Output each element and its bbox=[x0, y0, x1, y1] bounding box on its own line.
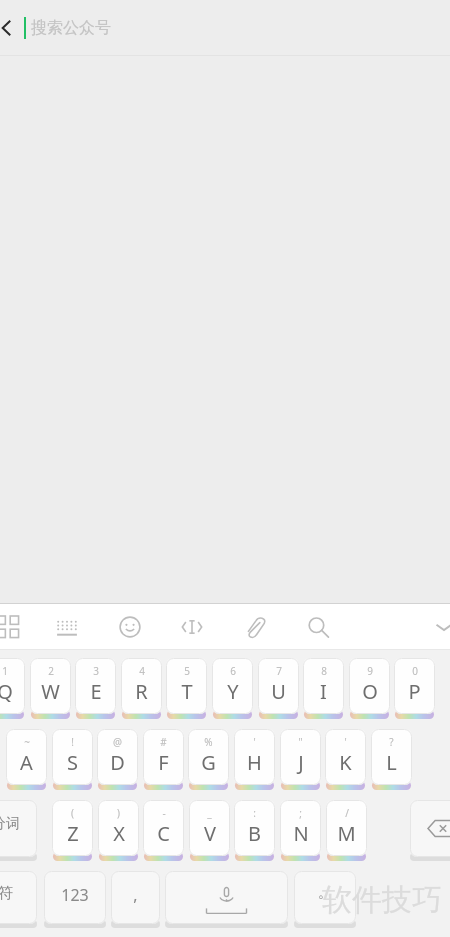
staticText: - bbox=[162, 806, 166, 820]
button[interactable]: ! bbox=[52, 729, 93, 791]
staticText: L bbox=[386, 749, 397, 776]
staticText: 7 bbox=[276, 664, 282, 678]
button[interactable]: 123 bbox=[44, 871, 106, 929]
staticText: P bbox=[408, 678, 421, 705]
staticText: ? bbox=[389, 735, 394, 749]
staticText: 符 bbox=[0, 884, 13, 903]
button[interactable]: 7 bbox=[258, 658, 299, 720]
button[interactable]: Emoji bbox=[116, 604, 144, 649]
staticText: F bbox=[158, 749, 169, 776]
staticText: G bbox=[201, 749, 216, 776]
staticText: _ bbox=[207, 806, 212, 820]
staticText: : bbox=[253, 806, 256, 820]
staticText: ! bbox=[71, 735, 74, 749]
button[interactable]: 0 bbox=[394, 658, 435, 720]
staticText: ' bbox=[344, 735, 347, 749]
staticText: I bbox=[320, 678, 327, 705]
button[interactable] bbox=[410, 800, 450, 862]
button[interactable]: Panels bbox=[0, 604, 22, 649]
button[interactable]: 4 bbox=[121, 658, 162, 720]
staticText: ; bbox=[299, 806, 302, 820]
staticText: M bbox=[337, 820, 356, 847]
button[interactable]: Keyboard bbox=[53, 604, 81, 649]
staticText: 3 bbox=[93, 664, 99, 678]
button[interactable]: % bbox=[188, 729, 229, 791]
button[interactable]: : bbox=[234, 800, 275, 862]
button[interactable]: / bbox=[326, 800, 367, 862]
button[interactable]: ( bbox=[52, 800, 93, 862]
button[interactable]: 2 bbox=[30, 658, 71, 720]
button[interactable]: 。 bbox=[294, 871, 356, 929]
button[interactable]: ~ bbox=[6, 729, 47, 791]
staticText: E bbox=[90, 678, 102, 705]
button[interactable]: Search bbox=[304, 604, 332, 649]
staticText: Y bbox=[227, 678, 239, 705]
staticText: 5 bbox=[184, 664, 190, 678]
staticText: 。 bbox=[318, 884, 332, 902]
button[interactable]: Back bbox=[0, 13, 22, 43]
button[interactable]: 符 bbox=[0, 871, 37, 929]
button[interactable]: 搜索公众号 bbox=[24, 17, 450, 39]
button[interactable]: Edit text bbox=[178, 604, 206, 649]
staticText: Z bbox=[67, 820, 79, 847]
staticText: 0 bbox=[412, 664, 418, 678]
button[interactable]: 1 bbox=[0, 658, 25, 720]
staticText: 1 bbox=[2, 664, 8, 678]
button[interactable]: 9 bbox=[349, 658, 390, 720]
staticText: H bbox=[247, 749, 262, 776]
staticText: 123 bbox=[61, 884, 89, 906]
staticText: J bbox=[298, 749, 304, 776]
staticText: O bbox=[362, 678, 378, 705]
staticText: " bbox=[298, 735, 303, 749]
button[interactable]: - bbox=[143, 800, 184, 862]
button[interactable]: Hide keyboard bbox=[430, 604, 450, 649]
button[interactable]: ? bbox=[371, 729, 412, 791]
staticText: @ bbox=[113, 735, 122, 749]
staticText: 分词 bbox=[0, 815, 20, 833]
staticText: % bbox=[204, 735, 213, 749]
staticText: 软件技巧 bbox=[322, 881, 442, 919]
button[interactable]: ' bbox=[325, 729, 366, 791]
staticText: 2 bbox=[48, 664, 54, 678]
staticText: ( bbox=[71, 806, 74, 820]
button[interactable]: Clipboard bbox=[241, 604, 269, 649]
staticText: U bbox=[271, 678, 286, 705]
staticText: Q bbox=[0, 678, 13, 705]
button[interactable]: 5 bbox=[166, 658, 207, 720]
staticText: R bbox=[135, 678, 148, 705]
staticText: 6 bbox=[230, 664, 236, 678]
button[interactable]: ' bbox=[234, 729, 275, 791]
staticText: A bbox=[20, 749, 33, 776]
staticText: , bbox=[133, 884, 138, 906]
staticText: C bbox=[157, 820, 170, 847]
staticText: 9 bbox=[367, 664, 373, 678]
button[interactable]: 3 bbox=[75, 658, 116, 720]
button[interactable]: @ bbox=[97, 729, 138, 791]
button[interactable]: ) bbox=[98, 800, 139, 862]
staticText: D bbox=[110, 749, 125, 776]
staticText: W bbox=[41, 678, 60, 705]
staticText: # bbox=[160, 735, 167, 749]
button[interactable]: _ bbox=[189, 800, 230, 862]
staticText: ~ bbox=[24, 735, 30, 749]
staticText: 8 bbox=[321, 664, 327, 678]
button[interactable]: # bbox=[143, 729, 184, 791]
staticText: S bbox=[67, 749, 78, 776]
staticText: B bbox=[248, 820, 261, 847]
button[interactable]: 8 bbox=[303, 658, 344, 720]
staticText: X bbox=[113, 820, 125, 847]
staticText: ) bbox=[117, 806, 120, 820]
staticText: V bbox=[204, 820, 216, 847]
staticText: T bbox=[181, 678, 193, 705]
button[interactable]: " bbox=[280, 729, 321, 791]
staticText: 4 bbox=[139, 664, 145, 678]
staticText: 搜索公众号 bbox=[31, 18, 111, 38]
button[interactable]: , bbox=[111, 871, 160, 929]
button[interactable] bbox=[165, 871, 288, 929]
button[interactable]: 分词 bbox=[0, 800, 37, 862]
staticText: K bbox=[339, 749, 352, 776]
staticText: ' bbox=[253, 735, 256, 749]
button[interactable]: 6 bbox=[212, 658, 253, 720]
staticText: N bbox=[293, 820, 309, 847]
button[interactable]: ; bbox=[280, 800, 321, 862]
